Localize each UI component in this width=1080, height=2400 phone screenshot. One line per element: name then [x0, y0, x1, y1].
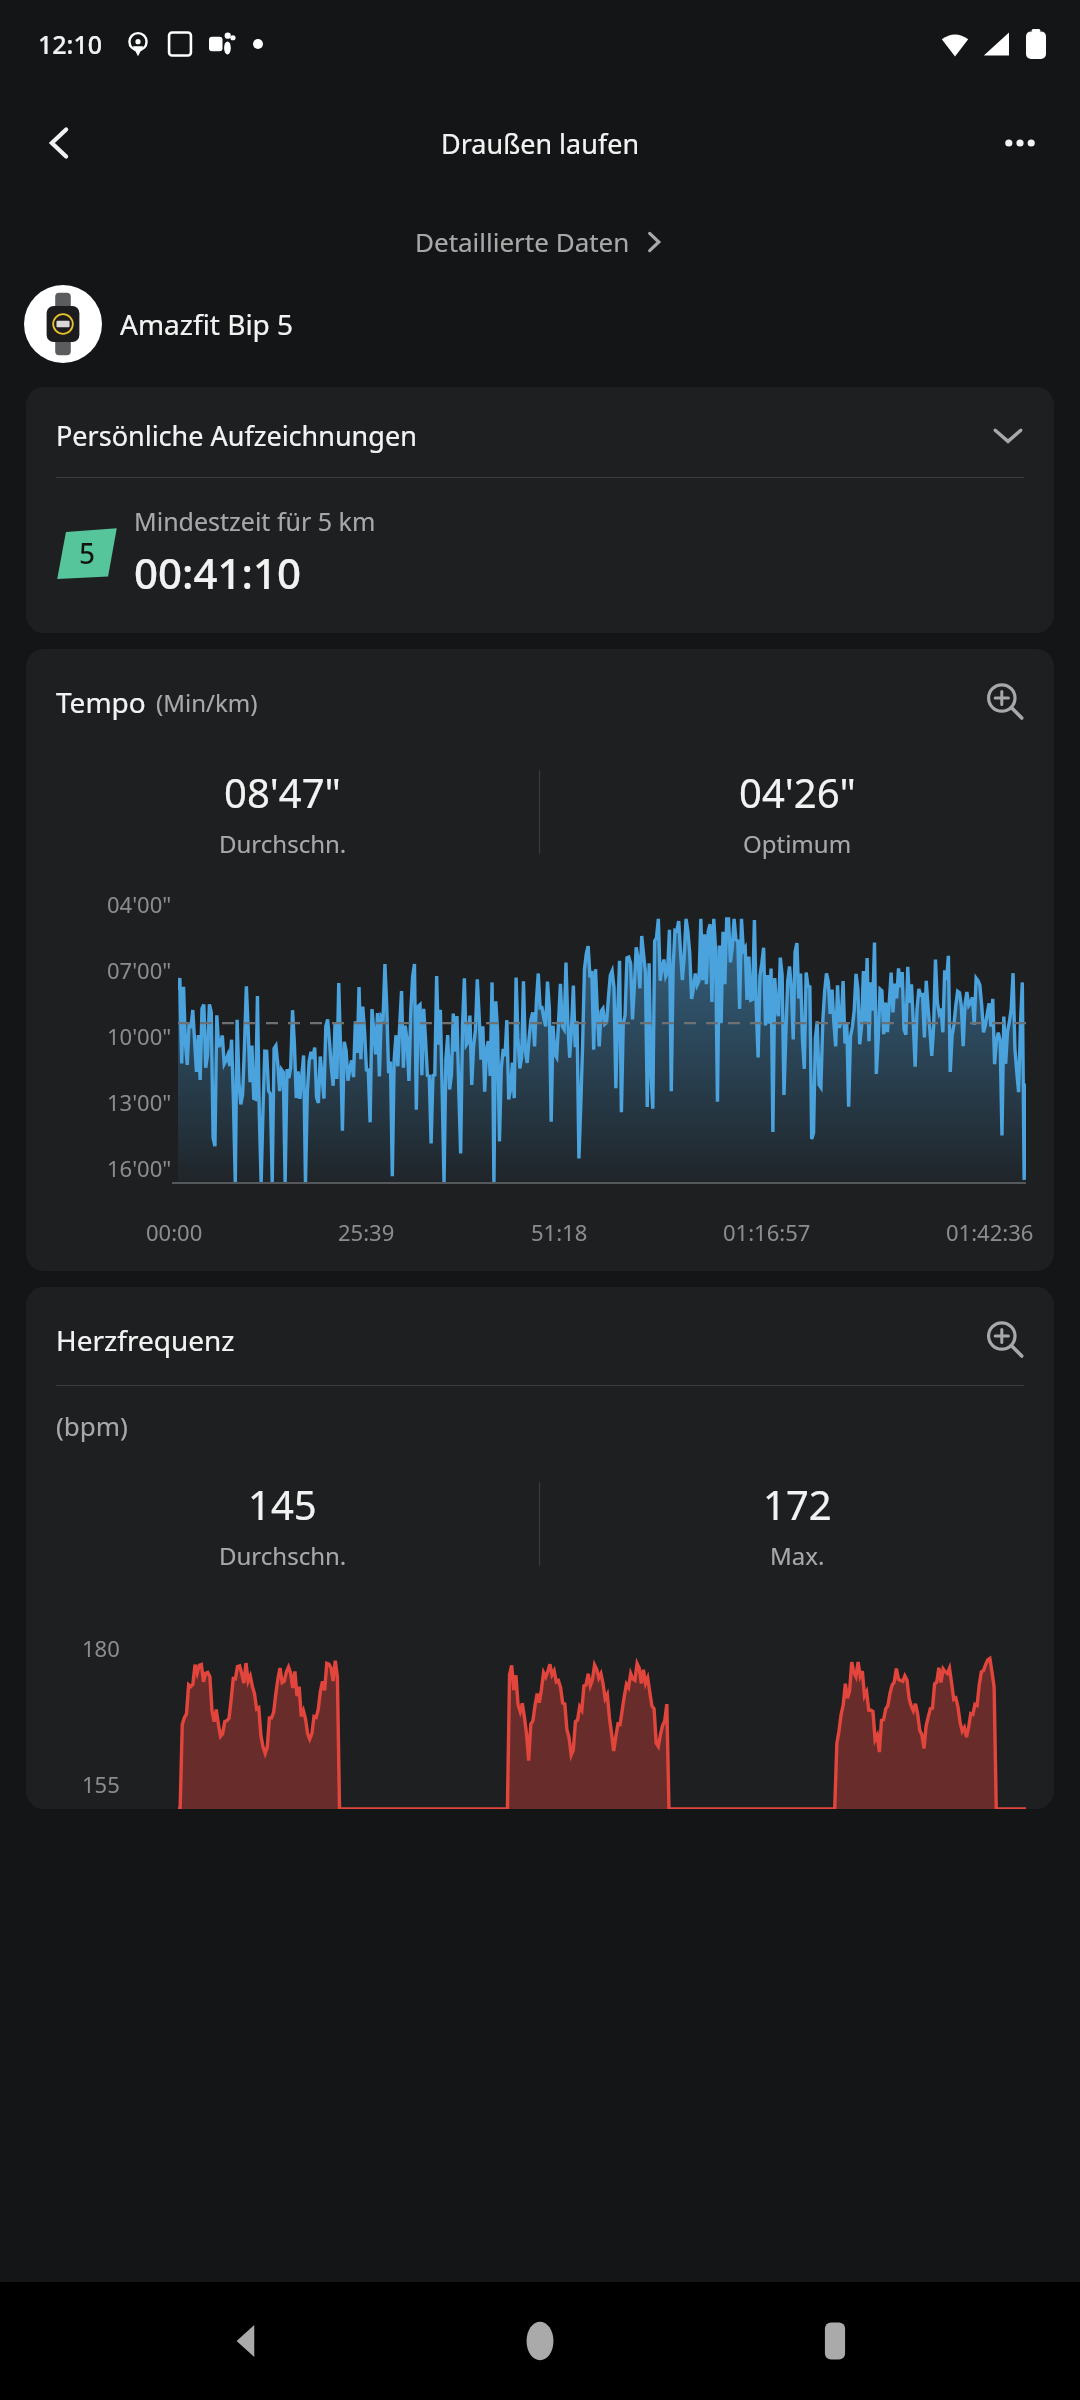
staticText: Max.: [770, 1539, 825, 1572]
staticText: 16'00": [107, 1153, 172, 1183]
button[interactable]: Übersicht: [785, 2291, 885, 2391]
staticText: (Min/km): [156, 686, 258, 719]
staticText: Herzfrequenz: [56, 1321, 235, 1359]
button[interactable]: Zurück: [195, 2291, 295, 2391]
staticText: 12:10: [38, 27, 103, 61]
button[interactable]: Vergrößern: [982, 1317, 1028, 1363]
staticText: Amazfit Bip 5: [120, 305, 294, 343]
button[interactable]: Detaillierte Daten: [401, 216, 680, 267]
staticText: Tempo: [56, 683, 146, 721]
staticText: 08'47": [224, 765, 341, 819]
staticText: 00:00: [146, 1217, 203, 1247]
staticText: 5: [79, 534, 96, 572]
staticText: 10'00": [107, 1021, 172, 1051]
staticText: 25:39: [338, 1217, 395, 1247]
staticText: 51:18: [531, 1217, 588, 1247]
staticText: 172: [763, 1477, 832, 1531]
staticText: (bpm): [56, 1408, 128, 1443]
staticText: Detaillierte Daten: [415, 224, 630, 259]
staticText: 145: [248, 1477, 317, 1531]
button[interactable]: Tempo: [26, 649, 1054, 747]
staticText: Mindestzeit für 5 km: [134, 504, 376, 538]
staticText: Durchschn.: [219, 1539, 347, 1572]
staticText: 04'26": [739, 765, 856, 819]
button[interactable]: Amazfit Bip 5: [0, 281, 1080, 367]
button[interactable]: Persönliche Aufzeichnungen: [26, 387, 1054, 477]
staticText: 180: [82, 1633, 120, 1663]
button[interactable]: Mehr Optionen: [980, 103, 1060, 183]
staticText: 04'00": [107, 889, 172, 919]
button[interactable]: Zurück: [20, 103, 100, 183]
button[interactable]: Startbildschirm: [490, 2291, 590, 2391]
staticText: Draußen laufen: [441, 125, 640, 162]
staticText: 01:42:36: [946, 1217, 1034, 1247]
staticText: 155: [82, 1769, 120, 1799]
staticText: 01:16:57: [723, 1217, 811, 1247]
staticText: Optimum: [743, 827, 852, 860]
staticText: 13'00": [107, 1087, 172, 1117]
staticText: Durchschn.: [219, 827, 347, 860]
staticText: 07'00": [107, 955, 172, 985]
button[interactable]: Vergrößern: [982, 679, 1028, 725]
button[interactable]: Herzfrequenz: [26, 1287, 1054, 1385]
staticText: 00:41:10: [134, 544, 301, 601]
staticText: Persönliche Aufzeichnungen: [56, 417, 988, 454]
